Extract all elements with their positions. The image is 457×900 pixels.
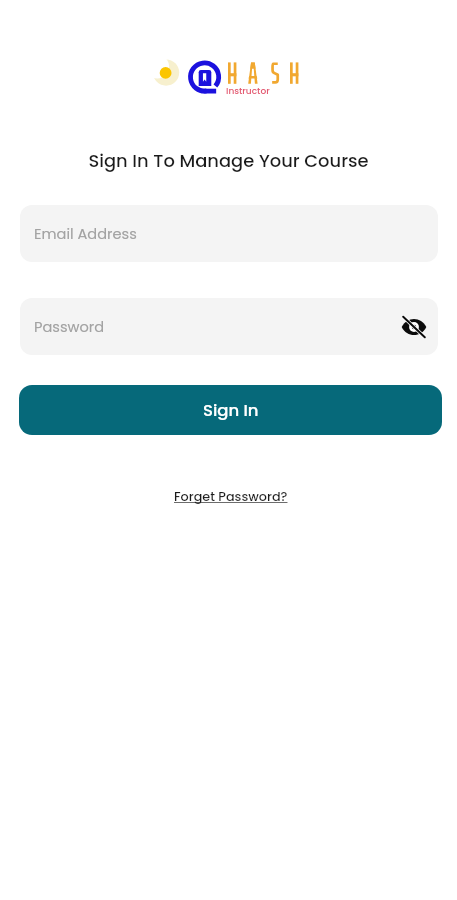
button[interactable]: Email Address (20, 205, 438, 262)
staticText: Sign In (203, 399, 259, 422)
button[interactable]: Forget Password? (172, 485, 290, 509)
staticText: Forget Password? (174, 488, 288, 506)
staticText: Password (34, 317, 105, 337)
button[interactable]: Password (20, 298, 438, 355)
staticText: Instructor (226, 85, 270, 98)
button[interactable]: Show password (392, 305, 436, 349)
staticText: Email Address (34, 224, 137, 244)
staticText: Sign In To Manage Your Course (0, 148, 457, 173)
button[interactable]: Sign In (19, 385, 442, 435)
